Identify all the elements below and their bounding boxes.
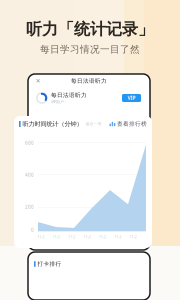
staticText: 11-2 [53, 234, 60, 239]
staticText: 听力时间统计（分钟） [23, 120, 83, 128]
staticText: 最近一周 [86, 121, 102, 126]
staticText: 11-2 [114, 234, 121, 239]
staticText: 听力「统计记录」 [26, 19, 154, 39]
button[interactable]: Close [33, 76, 43, 86]
staticText: 每日法语听力 [71, 77, 107, 85]
staticText: 400 [25, 172, 34, 178]
button[interactable]: 查看排行榜 [109, 120, 147, 128]
staticText: 每日学习情况一目了然 [40, 43, 140, 55]
staticText: 11-2 [37, 234, 44, 239]
staticText: 11-2 [83, 234, 90, 239]
staticText: 11-2 [130, 234, 137, 239]
button[interactable]: VIP [122, 94, 141, 102]
staticText: 11-2 [99, 234, 106, 239]
staticText: ✕ [35, 77, 40, 84]
staticText: 打卡排行 [38, 260, 62, 268]
staticText: 600 [25, 140, 34, 146]
staticText: 查看排行榜 [117, 120, 147, 128]
staticText: 200 [25, 204, 34, 210]
staticText: VIP [127, 95, 135, 101]
staticText: 11-2 [68, 234, 75, 239]
staticText: 每日法语听力 [51, 92, 87, 99]
staticText: 0 [31, 227, 34, 233]
staticText: VIP用户 [51, 99, 64, 104]
